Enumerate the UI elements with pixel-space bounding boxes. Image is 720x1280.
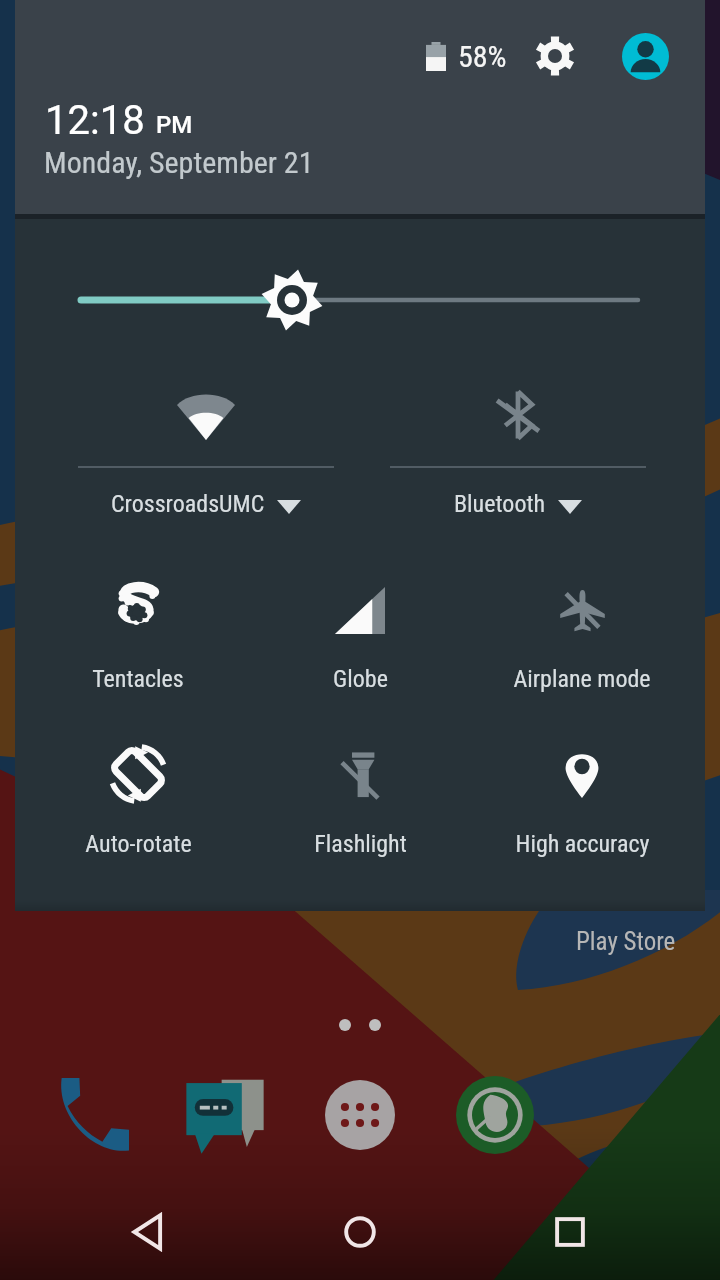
button[interactable]: Flashlight [249, 745, 471, 895]
button[interactable]: Browser [441, 1061, 549, 1169]
button[interactable]: Auto-rotate [27, 745, 249, 895]
staticText: CrossroadsUMC [111, 490, 265, 518]
staticText: Monday, September 21 [44, 145, 314, 180]
staticText: Flashlight [314, 830, 407, 858]
staticText: Globe [333, 665, 388, 693]
button[interactable]: Tentacles [27, 580, 249, 730]
button[interactable]: All apps [306, 1061, 414, 1169]
button[interactable]: Home [312, 1184, 408, 1280]
button[interactable]: Back [102, 1184, 198, 1280]
button[interactable]: Messages [171, 1061, 279, 1169]
button[interactable]: CrossroadsUMC [34, 374, 378, 574]
button[interactable]: Settings [525, 26, 585, 86]
button[interactable]: Globe [249, 580, 471, 730]
button[interactable]: Brightness [15, 219, 705, 339]
button[interactable]: Bluetooth [346, 374, 690, 574]
staticText: Airplane mode [513, 665, 651, 693]
staticText: Tentacles [92, 665, 184, 693]
button[interactable]: Recents [522, 1184, 618, 1280]
staticText: 58% [458, 39, 507, 74]
staticText: PM [156, 111, 193, 139]
staticText: 12:18 [45, 97, 145, 144]
staticText: Bluetooth [454, 490, 546, 518]
button[interactable]: Battery 58 percent [415, 25, 527, 87]
button[interactable]: Airplane mode [471, 580, 693, 730]
button[interactable]: High accuracy [471, 745, 693, 895]
staticText: Play Store [576, 927, 676, 956]
staticText: High accuracy [515, 830, 650, 858]
button[interactable]: User profile [615, 26, 675, 86]
staticText: Auto-rotate [85, 830, 192, 858]
button[interactable]: Phone [38, 1061, 146, 1169]
